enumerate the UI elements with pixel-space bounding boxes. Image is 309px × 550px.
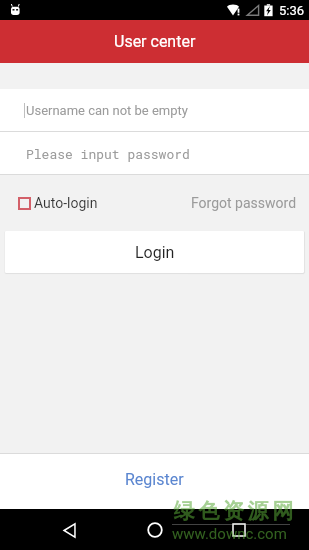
button[interactable]: Register [0, 454, 309, 509]
staticText: User center [114, 32, 196, 51]
staticText: Auto-login [34, 195, 98, 211]
staticText: www.downc.com [172, 525, 287, 543]
button[interactable]: Back [54, 515, 84, 545]
staticText: Username can not be empty [26, 103, 188, 118]
button[interactable]: Forgot password [191, 195, 297, 211]
button[interactable]: Login [5, 231, 304, 273]
button[interactable]: Username can not be empty [0, 89, 309, 131]
button[interactable]: Home [140, 515, 170, 545]
staticText: Forgot password [191, 195, 297, 211]
staticText: 5:36 [279, 3, 305, 18]
button[interactable]: Please input password [0, 132, 309, 174]
staticText: Please input password [26, 145, 190, 162]
staticText: 绿色资源网 [172, 498, 295, 524]
staticText: Register [125, 470, 184, 489]
button[interactable]: Auto-login [18, 195, 98, 211]
button[interactable]: Recent apps [224, 515, 254, 545]
staticText: Login [135, 243, 175, 262]
